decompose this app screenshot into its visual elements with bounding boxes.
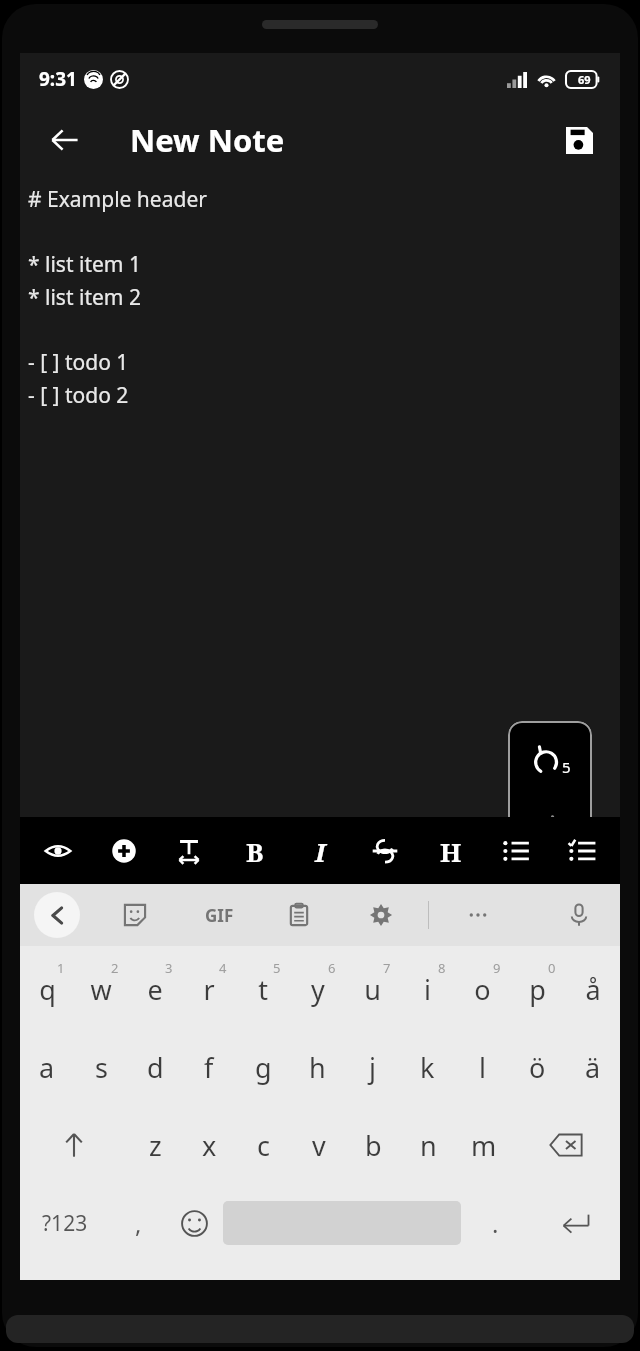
button[interactable]: m xyxy=(456,1106,511,1184)
staticText: 1 xyxy=(57,959,65,977)
staticText: , xyxy=(135,1207,142,1240)
button[interactable]: y xyxy=(290,950,345,1028)
staticText: t xyxy=(258,971,268,1008)
button[interactable]: a xyxy=(20,1028,74,1106)
staticText: - [ ] todo 1 xyxy=(28,348,129,377)
button[interactable]: H xyxy=(424,822,478,880)
button[interactable]: GIF xyxy=(196,892,242,938)
button[interactable]: o xyxy=(455,950,510,1028)
button[interactable]: Checklist xyxy=(555,822,609,880)
button[interactable]: Back xyxy=(42,117,88,163)
button[interactable]: ?123 xyxy=(20,1184,110,1262)
staticText: w xyxy=(90,971,112,1008)
staticText: - [ ] todo 2 xyxy=(28,381,129,410)
button[interactable]: Enter xyxy=(529,1184,620,1262)
staticText: m xyxy=(471,1127,497,1164)
button[interactable]: p xyxy=(510,950,565,1028)
button[interactable]: Undo xyxy=(508,730,592,790)
staticText: * list item 1 xyxy=(28,250,141,279)
staticText: c xyxy=(257,1127,270,1164)
staticText: e xyxy=(147,971,163,1008)
button[interactable]: d xyxy=(128,1028,182,1106)
button[interactable]: Back xyxy=(34,892,80,938)
staticText: 5 xyxy=(273,959,281,977)
button[interactable]: ö xyxy=(510,1028,565,1106)
staticText: r xyxy=(203,971,215,1008)
button[interactable]: Strikethrough xyxy=(358,822,412,880)
staticText: v xyxy=(312,1127,326,1164)
staticText: l xyxy=(479,1049,486,1086)
button[interactable]: k xyxy=(400,1028,455,1106)
staticText: # Example header xyxy=(28,185,207,214)
button[interactable]: z xyxy=(128,1106,182,1184)
button[interactable]: Stickers xyxy=(112,892,158,938)
button[interactable]: . xyxy=(461,1184,529,1262)
button[interactable]: Save xyxy=(556,117,602,163)
button[interactable]: l xyxy=(455,1028,510,1106)
staticText: I xyxy=(315,834,326,869)
button[interactable]: Redo xyxy=(508,800,592,860)
staticText: y xyxy=(311,971,325,1008)
button[interactable]: n xyxy=(401,1106,456,1184)
staticText: 7 xyxy=(383,959,391,977)
button[interactable]: Copy xyxy=(452,886,500,934)
staticText: . xyxy=(492,1207,499,1240)
staticText: i xyxy=(424,971,431,1008)
button[interactable]: g xyxy=(236,1028,290,1106)
staticText: f xyxy=(204,1049,214,1086)
button[interactable]: b xyxy=(346,1106,401,1184)
button[interactable]: I xyxy=(293,822,347,880)
button[interactable]: h xyxy=(290,1028,345,1106)
staticText: x xyxy=(202,1127,217,1164)
button[interactable]: Clipboard xyxy=(276,892,322,938)
button[interactable]: s xyxy=(74,1028,128,1106)
button[interactable]: Insert xyxy=(97,822,151,880)
button[interactable]: r xyxy=(182,950,236,1028)
button[interactable]: x xyxy=(182,1106,236,1184)
staticText: j xyxy=(369,1049,376,1086)
button[interactable]: Preview xyxy=(31,822,85,880)
staticText: 5 xyxy=(562,757,571,777)
button[interactable]: More xyxy=(455,892,501,938)
button[interactable]: t xyxy=(236,950,290,1028)
staticText: ö xyxy=(529,1049,546,1086)
button[interactable]: q xyxy=(20,950,74,1028)
staticText: b xyxy=(365,1127,382,1164)
button[interactable]: ä xyxy=(565,1028,620,1106)
staticText: 2 xyxy=(111,959,119,977)
button[interactable]: Move up xyxy=(255,886,303,934)
button[interactable]: w xyxy=(74,950,128,1028)
button[interactable]: å xyxy=(565,950,620,1028)
button[interactable]: Shift xyxy=(20,1106,128,1184)
staticText: k xyxy=(420,1049,435,1086)
staticText: z xyxy=(149,1127,162,1164)
button[interactable]: B xyxy=(228,822,282,880)
staticText: 0 xyxy=(548,959,556,977)
button[interactable]: Settings xyxy=(358,892,404,938)
staticText: p xyxy=(529,971,546,1008)
staticText: n xyxy=(420,1127,437,1164)
button[interactable]: Text size xyxy=(162,822,216,880)
button[interactable]: , xyxy=(110,1184,166,1262)
button[interactable]: v xyxy=(291,1106,346,1184)
staticText: 3 xyxy=(165,959,173,977)
button[interactable]: Move right xyxy=(189,886,237,934)
button[interactable]: c xyxy=(236,1106,291,1184)
button[interactable]: e xyxy=(128,950,182,1028)
button[interactable]: u xyxy=(345,950,400,1028)
button[interactable]: f xyxy=(182,1028,236,1106)
button[interactable]: Voice input xyxy=(556,892,602,938)
button[interactable]: Emoji xyxy=(166,1184,223,1262)
staticText: GIF xyxy=(205,904,234,927)
button[interactable]: Bullet list xyxy=(489,822,543,880)
staticText: 4 xyxy=(219,959,227,977)
button[interactable]: i xyxy=(400,950,455,1028)
button[interactable]: j xyxy=(345,1028,400,1106)
button[interactable]: Move left xyxy=(124,886,172,934)
button[interactable]: Backspace xyxy=(511,1106,620,1184)
staticText: g xyxy=(255,1049,272,1086)
button[interactable]: Delete xyxy=(386,886,434,934)
